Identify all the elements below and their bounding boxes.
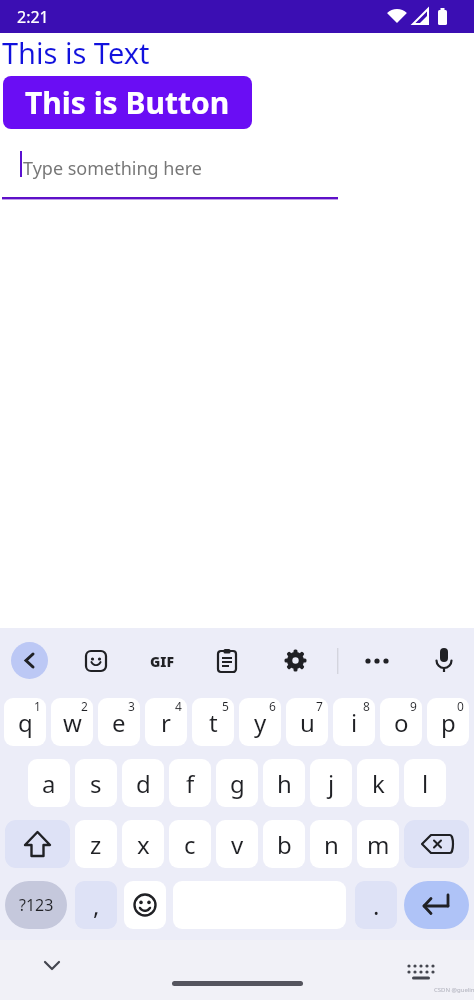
button[interactable] bbox=[404, 881, 469, 929]
button[interactable]: v bbox=[216, 820, 258, 868]
staticText: e bbox=[112, 706, 126, 739]
staticText: o bbox=[394, 706, 409, 739]
button[interactable]: k bbox=[357, 759, 399, 807]
button[interactable]: This is Button bbox=[3, 76, 252, 129]
staticText: i bbox=[351, 706, 358, 739]
staticText: 7 bbox=[316, 698, 323, 714]
button[interactable] bbox=[215, 648, 239, 674]
staticText: a bbox=[42, 767, 56, 800]
button[interactable]: d bbox=[122, 759, 164, 807]
button[interactable]: z bbox=[75, 820, 117, 868]
staticText: k bbox=[372, 767, 385, 800]
button[interactable]: n bbox=[310, 820, 352, 868]
button[interactable]: f bbox=[169, 759, 211, 807]
staticText: , bbox=[93, 889, 100, 922]
button[interactable]: t bbox=[192, 698, 234, 746]
staticText: 5 bbox=[222, 698, 229, 714]
button[interactable] bbox=[5, 820, 70, 868]
button[interactable] bbox=[402, 952, 438, 980]
staticText: Type something here bbox=[23, 156, 202, 181]
staticText: 6 bbox=[269, 698, 276, 714]
staticText: 0 bbox=[457, 698, 464, 714]
button[interactable]: Type something here bbox=[0, 140, 340, 202]
staticText: t bbox=[209, 706, 218, 739]
button[interactable]: q bbox=[4, 698, 46, 746]
staticText: g bbox=[230, 767, 245, 800]
button[interactable] bbox=[404, 820, 469, 868]
button[interactable]: , bbox=[75, 881, 117, 929]
staticText: 1 bbox=[34, 698, 41, 714]
staticText: q bbox=[18, 706, 33, 739]
staticText: This is Button bbox=[25, 82, 230, 123]
button[interactable]: s bbox=[75, 759, 117, 807]
staticText: CSDN @guelin bbox=[434, 986, 474, 994]
button[interactable]: ?123 bbox=[5, 881, 67, 929]
staticText: 4 bbox=[175, 698, 182, 714]
staticText: j bbox=[328, 767, 335, 800]
staticText: This is Text bbox=[2, 33, 150, 72]
button[interactable]: i bbox=[333, 698, 375, 746]
button[interactable] bbox=[428, 645, 460, 677]
button[interactable]: c bbox=[169, 820, 211, 868]
staticText: s bbox=[90, 767, 102, 800]
staticText: 8 bbox=[363, 698, 370, 714]
staticText: 2:21 bbox=[17, 6, 49, 28]
staticText: f bbox=[186, 767, 195, 800]
staticText: 2 bbox=[81, 698, 88, 714]
button[interactable] bbox=[84, 649, 108, 673]
staticText: w bbox=[63, 706, 82, 739]
staticText: GIF bbox=[150, 652, 175, 671]
button[interactable]: l bbox=[404, 759, 446, 807]
staticText: ?123 bbox=[19, 894, 54, 916]
button[interactable] bbox=[11, 642, 48, 679]
button[interactable] bbox=[38, 952, 66, 980]
staticText: . bbox=[373, 889, 380, 922]
button[interactable] bbox=[360, 645, 394, 677]
staticText: y bbox=[254, 706, 267, 739]
button[interactable]: u bbox=[286, 698, 328, 746]
staticText: r bbox=[161, 706, 171, 739]
button[interactable]: y bbox=[239, 698, 281, 746]
staticText: p bbox=[441, 706, 456, 739]
button[interactable]: . bbox=[355, 881, 397, 929]
button[interactable]: j bbox=[310, 759, 352, 807]
button[interactable]: b bbox=[263, 820, 305, 868]
button[interactable]: GIF bbox=[146, 650, 178, 672]
button[interactable]: p bbox=[427, 698, 469, 746]
button[interactable]: r bbox=[145, 698, 187, 746]
staticText: x bbox=[137, 828, 150, 861]
staticText: n bbox=[324, 828, 339, 861]
button[interactable]: w bbox=[51, 698, 93, 746]
staticText: m bbox=[367, 828, 390, 861]
staticText: u bbox=[300, 706, 315, 739]
staticText: 9 bbox=[410, 698, 417, 714]
button[interactable]: e bbox=[98, 698, 140, 746]
staticText: h bbox=[277, 767, 292, 800]
button[interactable] bbox=[124, 881, 166, 929]
staticText: v bbox=[231, 828, 244, 861]
button[interactable]: x bbox=[122, 820, 164, 868]
button[interactable] bbox=[283, 648, 308, 673]
staticText: c bbox=[184, 828, 196, 861]
button[interactable]: h bbox=[263, 759, 305, 807]
staticText: d bbox=[136, 767, 151, 800]
staticText: l bbox=[422, 767, 429, 800]
button[interactable]: g bbox=[216, 759, 258, 807]
button[interactable]: o bbox=[380, 698, 422, 746]
button[interactable]: m bbox=[357, 820, 399, 868]
staticText: 3 bbox=[128, 698, 135, 714]
staticText: b bbox=[277, 828, 292, 861]
button[interactable]: a bbox=[28, 759, 70, 807]
staticText: z bbox=[90, 828, 102, 861]
